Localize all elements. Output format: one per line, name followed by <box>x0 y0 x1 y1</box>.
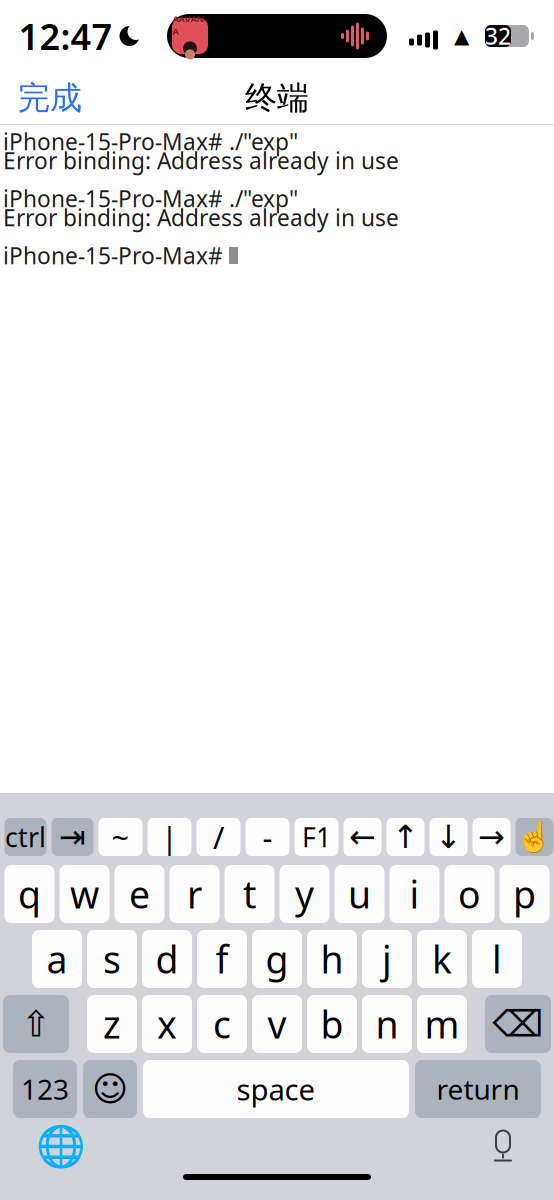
button[interactable]: r <box>169 865 219 923</box>
staticText: 32 <box>485 21 511 51</box>
button[interactable]: - <box>245 818 289 856</box>
button[interactable]: k <box>417 930 467 988</box>
staticText: t <box>243 869 256 919</box>
button[interactable]: return <box>415 1060 541 1118</box>
staticText: m <box>424 999 459 1049</box>
staticText: space <box>236 1069 315 1108</box>
staticText: w <box>70 869 99 919</box>
staticText: F1 <box>302 819 331 855</box>
staticText: | <box>161 817 178 857</box>
button[interactable]: u <box>334 865 384 923</box>
staticText: ~ <box>111 817 129 857</box>
button[interactable]: Shift <box>3 995 69 1053</box>
button[interactable]: / <box>196 818 240 856</box>
staticText: z <box>103 999 121 1049</box>
button[interactable]: 完成 <box>0 70 100 126</box>
button[interactable]: a <box>32 930 82 988</box>
staticText: return <box>436 1070 519 1108</box>
button[interactable]: → <box>472 818 510 856</box>
staticText: o <box>458 869 481 919</box>
staticText: y <box>295 869 314 919</box>
staticText: a <box>46 934 67 984</box>
staticText: iPhone-15-Pro-Max# ./"exp" <box>3 183 298 213</box>
staticText: ⇧ <box>21 1004 51 1044</box>
button[interactable]: s <box>87 930 137 988</box>
staticText: u <box>348 869 371 919</box>
staticText: ctrl <box>5 819 46 855</box>
staticText: i <box>409 869 419 919</box>
button[interactable]: ~ <box>98 818 142 856</box>
button[interactable]: Dictation <box>488 1118 554 1174</box>
button[interactable]: n <box>362 995 412 1053</box>
staticText: n <box>375 999 398 1049</box>
button[interactable]: d <box>142 930 192 988</box>
staticText: k <box>432 934 452 984</box>
button[interactable]: c <box>197 995 247 1053</box>
staticText <box>3 221 9 251</box>
staticText: j <box>382 934 392 984</box>
staticText: ↑ <box>392 819 419 855</box>
staticText: ⌫ <box>492 1004 543 1044</box>
staticText: 终端 <box>245 78 309 118</box>
staticText: b <box>320 999 343 1049</box>
button[interactable]: o <box>444 865 494 923</box>
staticText: h <box>320 934 343 984</box>
button[interactable]: ↑ <box>386 818 424 856</box>
button[interactable]: h <box>307 930 357 988</box>
staticText: s <box>103 934 121 984</box>
staticText: e <box>129 869 150 919</box>
staticText: Error binding: Address already in use <box>3 145 399 175</box>
button[interactable]: ☝ <box>515 818 553 856</box>
staticText: v <box>267 999 286 1049</box>
button[interactable]: F1 <box>294 818 338 856</box>
staticText: Error binding: Address already in use <box>3 202 399 232</box>
staticText: 12:47 <box>18 12 112 60</box>
button[interactable]: b <box>307 995 357 1053</box>
staticText: c <box>213 999 231 1049</box>
button[interactable]: ctrl <box>4 818 46 856</box>
button[interactable]: ⇥ <box>51 818 93 856</box>
button[interactable]: l <box>472 930 522 988</box>
button[interactable]: x <box>142 995 192 1053</box>
staticText <box>3 164 9 194</box>
staticText: x <box>157 999 177 1049</box>
button[interactable]: g <box>252 930 302 988</box>
staticText: ← <box>349 819 376 855</box>
button[interactable]: Next keyboard <box>0 1113 86 1179</box>
button[interactable]: m <box>417 995 467 1053</box>
button[interactable]: i <box>389 865 439 923</box>
button[interactable]: | <box>147 818 191 856</box>
staticText: ⇥ <box>59 819 86 855</box>
button[interactable]: e <box>114 865 164 923</box>
staticText: ↓ <box>435 819 462 855</box>
staticText: 完成 <box>18 78 82 118</box>
button[interactable]: Delete <box>485 995 551 1053</box>
button[interactable]: v <box>252 995 302 1053</box>
button[interactable]: w <box>59 865 109 923</box>
staticText: q <box>18 869 41 919</box>
button[interactable]: j <box>362 930 412 988</box>
staticText: → <box>478 819 505 855</box>
staticText: ☺ <box>92 1069 128 1109</box>
button[interactable]: p <box>499 865 549 923</box>
staticText: - <box>262 817 272 857</box>
button[interactable]: ← <box>343 818 381 856</box>
button[interactable]: ↓ <box>429 818 467 856</box>
staticText: 123 <box>21 1070 69 1108</box>
staticText: ▲ <box>454 25 469 47</box>
button[interactable]: q <box>4 865 54 923</box>
staticText: f <box>215 934 228 984</box>
button[interactable]: space <box>143 1060 409 1118</box>
staticText: p <box>513 869 536 919</box>
button[interactable]: ☺ <box>83 1060 137 1118</box>
button[interactable]: f <box>197 930 247 988</box>
button[interactable]: z <box>87 995 137 1053</box>
button[interactable]: t <box>224 865 274 923</box>
button[interactable]: y <box>279 865 329 923</box>
staticText: ☝ <box>516 820 553 854</box>
staticText: / <box>213 817 224 857</box>
staticText: g <box>265 934 288 984</box>
staticText: iPhone-15-Pro-Max# <box>3 240 229 270</box>
staticText: d <box>155 934 178 984</box>
button[interactable]: 123 <box>13 1060 77 1118</box>
